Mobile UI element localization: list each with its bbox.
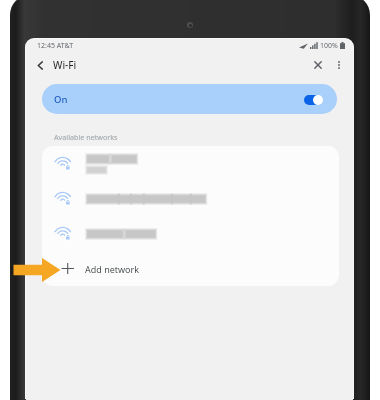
button[interactable]: Back bbox=[31, 56, 49, 74]
staticText: 100% bbox=[320, 41, 338, 51]
staticText: Wi-Fi bbox=[53, 58, 77, 72]
staticText: 12:45 AT&T bbox=[37, 41, 74, 51]
button[interactable] bbox=[42, 216, 339, 251]
button[interactable] bbox=[42, 181, 339, 216]
button[interactable]: More options bbox=[330, 56, 348, 74]
button[interactable]: On bbox=[42, 84, 337, 114]
button[interactable]: Scan QR code bbox=[309, 56, 327, 74]
staticText: On bbox=[54, 93, 68, 106]
button[interactable] bbox=[42, 146, 339, 181]
button[interactable]: Add network bbox=[42, 251, 339, 286]
staticText: Available networks bbox=[54, 132, 118, 142]
staticText: Add network bbox=[85, 263, 140, 275]
